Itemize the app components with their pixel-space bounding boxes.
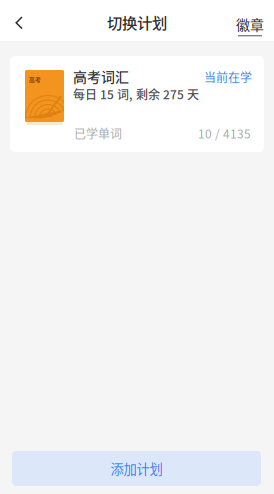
- button[interactable]: 返回: [0, 0, 38, 41]
- staticText: 每日 15 词, 剩余 275 天: [73, 85, 199, 103]
- staticText: 当前在学: [204, 68, 252, 86]
- staticText: 高考: [29, 75, 41, 84]
- staticText: 已学单词: [74, 125, 122, 142]
- button[interactable]: 徽章: [226, 0, 274, 41]
- button[interactable]: 高考: [10, 56, 264, 152]
- staticText: 徽章: [236, 14, 264, 34]
- staticText: 切换计划: [107, 11, 167, 33]
- staticText: 添加计划: [110, 459, 162, 478]
- staticText: 高考词汇: [73, 66, 129, 86]
- staticText: 10 / 4135: [198, 125, 251, 142]
- button[interactable]: 添加计划: [12, 451, 261, 486]
